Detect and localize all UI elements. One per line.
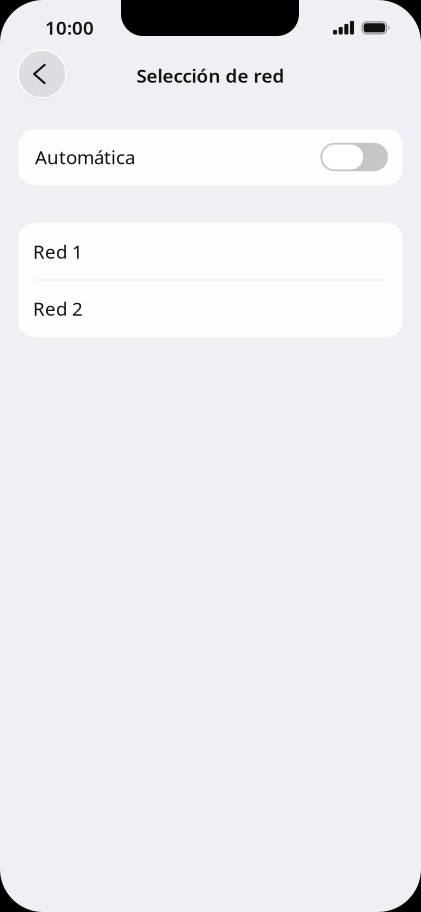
staticText: 10:00 <box>45 15 94 40</box>
staticText: Red 1 <box>33 239 83 264</box>
staticText: Automática <box>35 145 135 169</box>
button[interactable]: Red 1 <box>18 223 403 280</box>
button[interactable]: Automática <box>18 129 403 185</box>
staticText: Red 2 <box>33 296 83 321</box>
button[interactable]: Atrás <box>17 49 67 99</box>
button[interactable]: Red 2 <box>18 280 403 337</box>
staticText: Selección de red <box>136 63 284 88</box>
